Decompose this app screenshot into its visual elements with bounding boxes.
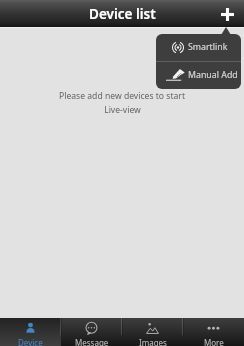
staticText: Device [18, 337, 43, 346]
button[interactable]: More [183, 318, 244, 346]
button[interactable]: Message [61, 318, 122, 346]
staticText: Please add new devices to start [59, 90, 185, 102]
staticText: Device list [89, 5, 156, 23]
button[interactable]: Smartlink [156, 34, 241, 61]
staticText: Smartlink [188, 41, 228, 53]
staticText: Live-view [104, 104, 141, 116]
button[interactable]: Device [0, 318, 61, 346]
staticText: More [204, 337, 224, 346]
staticText: Manual Add [188, 69, 238, 81]
button[interactable]: Add device [214, 1, 240, 27]
staticText: Images [139, 337, 167, 346]
button[interactable]: Images [122, 318, 183, 346]
button[interactable]: Manual Add [156, 62, 241, 89]
staticText: Message [75, 337, 109, 346]
